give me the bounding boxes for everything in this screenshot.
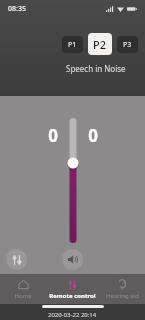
staticText: 0 xyxy=(37,124,69,147)
button[interactable]: P1 xyxy=(62,36,83,53)
button[interactable]: P3 xyxy=(117,36,138,53)
staticText: P3 xyxy=(123,40,132,50)
button[interactable]: Home xyxy=(0,274,46,304)
button[interactable]: Volume slider xyxy=(55,118,91,243)
staticText: Hearing aid xyxy=(106,292,139,300)
staticText: Speech in Noise xyxy=(66,63,126,74)
staticText: 0 xyxy=(77,124,109,147)
staticText: P1 xyxy=(68,40,77,50)
button[interactable]: Remote control xyxy=(46,274,99,304)
staticText: P2 xyxy=(93,37,107,52)
staticText: Remote control xyxy=(49,292,96,300)
button[interactable]: P2 xyxy=(88,33,112,55)
staticText: Home xyxy=(14,292,32,300)
button[interactable]: Equalizer xyxy=(6,249,27,270)
staticText: 08:35 xyxy=(8,4,26,14)
staticText: 2020-03-22 20:14 xyxy=(48,311,97,319)
button[interactable]: Hearing aid xyxy=(99,274,145,304)
button[interactable]: Volume xyxy=(62,249,83,270)
